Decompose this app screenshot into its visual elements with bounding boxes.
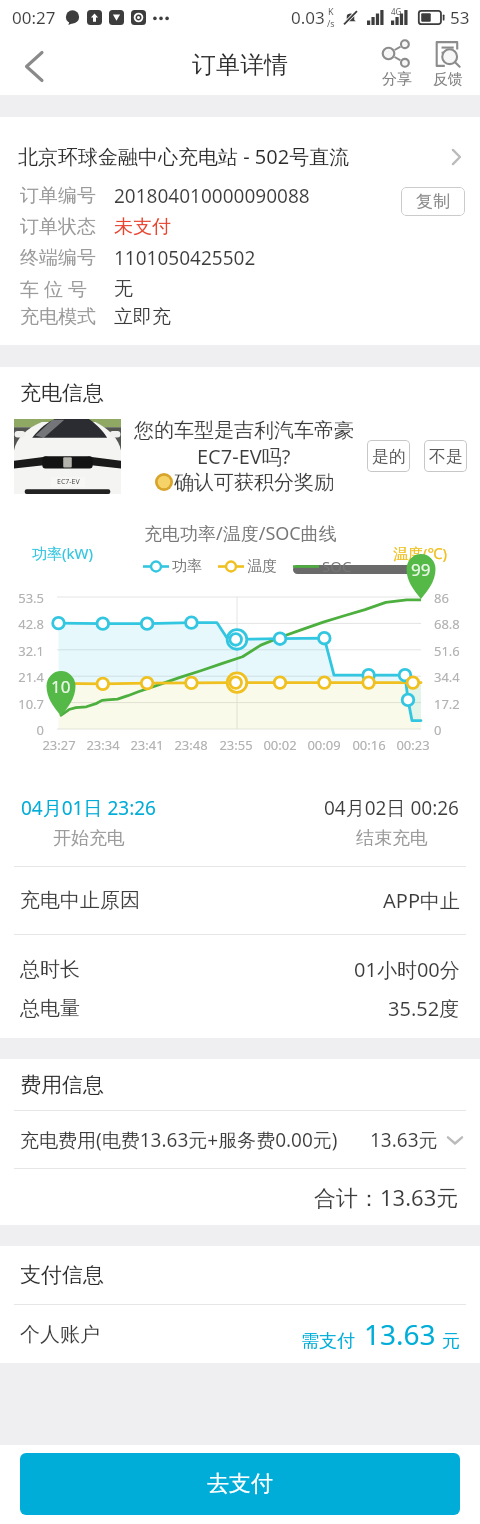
staticText: 04月01日 23:26 bbox=[21, 795, 156, 821]
staticText: 结束充电 bbox=[356, 827, 428, 850]
staticText: EC7-EV吗? bbox=[197, 443, 291, 470]
staticText: 23:34 bbox=[83, 736, 123, 754]
button[interactable]: 充电费用(电费13.63元+服务费0.00元) bbox=[0, 1111, 480, 1168]
staticText: 201804010000090088 bbox=[114, 183, 310, 209]
staticText: 支付信息 bbox=[20, 1262, 104, 1288]
staticText: 34.4 bbox=[434, 668, 460, 686]
staticText: 0.03 bbox=[291, 6, 325, 29]
staticText: 确认可获积分奖励 bbox=[174, 470, 334, 494]
staticText: 00:02 bbox=[260, 736, 300, 754]
staticText: 开始充电 bbox=[53, 827, 125, 850]
staticText: 35.52度 bbox=[388, 995, 460, 1022]
staticText: 订单详情 bbox=[192, 50, 288, 80]
staticText: 23:48 bbox=[171, 736, 211, 754]
staticText: 32.1 bbox=[0, 642, 44, 660]
staticText: 车 位 号 bbox=[20, 276, 114, 302]
staticText: 23:27 bbox=[39, 736, 79, 754]
staticText: 23:41 bbox=[127, 736, 167, 754]
staticText: 00:16 bbox=[349, 736, 389, 754]
staticText: 10.7 bbox=[0, 695, 44, 713]
staticText: 21.4 bbox=[0, 668, 44, 686]
staticText: 订单状态 bbox=[20, 215, 114, 239]
staticText: 温度 bbox=[247, 557, 277, 576]
staticText: APP中止 bbox=[383, 887, 460, 914]
button[interactable]: 去支付 bbox=[20, 1453, 460, 1515]
staticText: K bbox=[328, 5, 334, 17]
staticText: /s bbox=[327, 17, 335, 29]
staticText: 04月02日 00:26 bbox=[324, 795, 459, 821]
staticText: 无 bbox=[114, 277, 133, 301]
staticText: 功率(kW) bbox=[32, 543, 93, 563]
staticText: 0 bbox=[434, 721, 442, 739]
staticText: 不是 bbox=[429, 446, 463, 467]
staticText: 00:09 bbox=[304, 736, 344, 754]
staticText: 10 bbox=[51, 675, 71, 698]
staticText: 充电中止原因 bbox=[20, 888, 140, 913]
staticText: 01小时00分 bbox=[354, 956, 460, 983]
staticText: 13.63 bbox=[364, 1315, 436, 1353]
staticText: 总电量 bbox=[20, 996, 80, 1021]
staticText: 充电功率/温度/SOC曲线 bbox=[144, 521, 337, 546]
staticText: 费用信息 bbox=[20, 1072, 104, 1098]
staticText: 温度(℃) bbox=[393, 543, 447, 563]
button[interactable]: 不是 bbox=[424, 440, 467, 472]
staticText: 1101050425502 bbox=[114, 245, 256, 271]
staticText: 充电信息 bbox=[20, 380, 104, 406]
staticText: 51.6 bbox=[434, 642, 460, 660]
staticText: 00:23 bbox=[393, 736, 433, 754]
staticText: 4G bbox=[391, 6, 402, 17]
staticText: 总时长 bbox=[20, 957, 80, 982]
staticText: 分享 bbox=[382, 70, 412, 89]
staticText: 86 bbox=[434, 589, 449, 607]
staticText: 00:27 bbox=[12, 6, 56, 29]
staticText: 需支付 bbox=[301, 1330, 355, 1353]
button[interactable]: 复制 bbox=[401, 187, 465, 216]
staticText: SOC bbox=[322, 556, 352, 576]
staticText: 订单编号 bbox=[20, 184, 114, 208]
staticText: 68.8 bbox=[434, 615, 460, 633]
staticText: 去支付 bbox=[207, 1470, 273, 1498]
staticText: 充电费用(电费13.63元+服务费0.00元) bbox=[20, 1127, 338, 1153]
staticText: 42.8 bbox=[0, 615, 44, 633]
button[interactable]: 北京环球金融中心充电站 - 502号直流 bbox=[0, 117, 480, 196]
staticText: 复制 bbox=[416, 191, 450, 212]
staticText: 元 bbox=[442, 1330, 460, 1353]
staticText: 23:55 bbox=[216, 736, 256, 754]
staticText: 充电模式 bbox=[20, 305, 114, 329]
button[interactable]: Back bbox=[0, 34, 66, 95]
staticText: 合计：13.63元 bbox=[314, 1182, 459, 1212]
staticText: 99 bbox=[411, 558, 431, 581]
staticText: 未支付 bbox=[114, 215, 171, 239]
staticText: 53 bbox=[450, 6, 470, 29]
staticText: 17.2 bbox=[434, 695, 460, 713]
staticText: 功率 bbox=[172, 557, 202, 576]
staticText: 北京环球金融中心充电站 - 502号直流 bbox=[18, 143, 445, 170]
staticText: 53.5 bbox=[0, 589, 44, 607]
staticText: 立即充 bbox=[114, 305, 171, 329]
staticText: 个人账户 bbox=[20, 1322, 100, 1347]
staticText: 0 bbox=[0, 721, 44, 739]
staticText: 反馈 bbox=[433, 70, 463, 89]
staticText: EC7-EV bbox=[57, 477, 80, 487]
staticText: 您的车型是吉利汽车帝豪 bbox=[134, 418, 354, 443]
button[interactable]: 分享 bbox=[378, 37, 415, 92]
button[interactable]: 是的 bbox=[367, 440, 410, 472]
staticText: 13.63元 bbox=[370, 1127, 438, 1153]
staticText: 是的 bbox=[372, 446, 406, 467]
button[interactable]: 反馈 bbox=[429, 37, 466, 92]
staticText: 终端编号 bbox=[20, 246, 114, 270]
